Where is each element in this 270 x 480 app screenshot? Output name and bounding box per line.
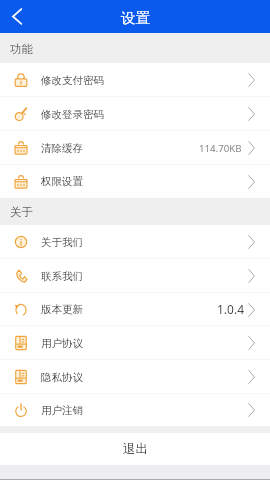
button[interactable]: 退出 <box>0 433 270 465</box>
staticText: 修改支付密码 <box>41 74 104 87</box>
staticText: 关于我们 <box>41 236 83 249</box>
staticText: 版本更新 <box>41 303 83 316</box>
button[interactable]: 用户注销 <box>0 394 270 426</box>
staticText: 修改登录密码 <box>41 108 104 121</box>
button[interactable]: 权限设置 <box>0 165 270 198</box>
button[interactable]: 清除缓存 <box>0 131 270 165</box>
button[interactable]: 用户协议 <box>0 326 270 360</box>
button[interactable]: 关于我们 <box>0 225 270 259</box>
staticText: 权限设置 <box>41 175 83 188</box>
staticText: 清除缓存 <box>41 142 83 155</box>
button[interactable]: 修改登录密码 <box>0 97 270 131</box>
staticText: 联系我们 <box>41 270 83 283</box>
button[interactable]: Back <box>0 0 34 33</box>
staticText: 用户协议 <box>41 337 83 350</box>
staticText: 用户注销 <box>41 404 83 417</box>
staticText: 114.70KB <box>199 142 242 155</box>
button[interactable]: 版本更新 <box>0 293 270 326</box>
button[interactable]: 隐私协议 <box>0 360 270 394</box>
staticText: 关于 <box>10 205 33 219</box>
staticText: 隐私协议 <box>41 371 83 384</box>
staticText: 退出 <box>123 441 148 457</box>
button[interactable]: 修改支付密码 <box>0 63 270 97</box>
staticText: 设置 <box>121 9 150 27</box>
staticText: 功能 <box>10 42 33 56</box>
button[interactable]: 联系我们 <box>0 259 270 293</box>
staticText: 1.0.4 <box>217 301 245 317</box>
